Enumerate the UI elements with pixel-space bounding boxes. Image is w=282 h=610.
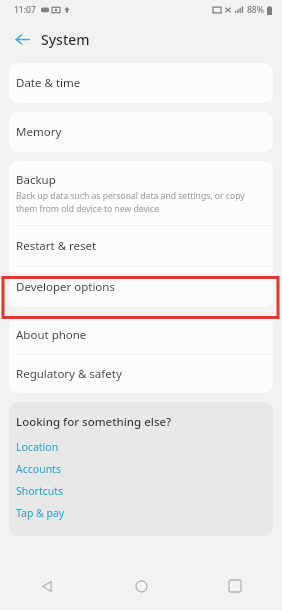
button[interactable]: Restart & reset	[9, 226, 273, 266]
staticText: 11:07	[14, 4, 36, 16]
staticText: Date & time	[16, 75, 81, 91]
staticText: About phone	[16, 327, 87, 343]
button[interactable]: Accounts	[16, 458, 273, 480]
staticText: Back up data such as personal data and s…	[16, 190, 259, 214]
button[interactable]: About phone	[9, 316, 273, 354]
staticText: 88%	[247, 4, 264, 16]
button[interactable]: Date & time	[9, 63, 273, 103]
staticText: Accounts	[16, 462, 61, 476]
button[interactable]: Tap & pay	[16, 502, 273, 524]
staticText: Memory	[16, 124, 62, 140]
button[interactable]: Back	[8, 25, 36, 53]
staticText: System	[41, 30, 90, 49]
button[interactable]: Recents	[188, 562, 282, 610]
button[interactable]: Backup	[9, 161, 273, 225]
button[interactable]: Shortcuts	[16, 480, 273, 502]
staticText: Tap & pay	[16, 506, 65, 520]
button[interactable]: Home	[94, 562, 188, 610]
staticText: Backup	[16, 172, 56, 188]
button[interactable]: Back	[0, 562, 94, 610]
button[interactable]: Regulatory & safety	[9, 355, 273, 393]
staticText: Shortcuts	[16, 484, 64, 498]
staticText: Developer options	[16, 279, 115, 295]
staticText: Location	[16, 440, 59, 454]
staticText: Regulatory & safety	[16, 366, 122, 382]
button[interactable]: Location	[16, 436, 273, 458]
button[interactable]: Memory	[9, 112, 273, 152]
staticText: Restart & reset	[16, 238, 97, 254]
button[interactable]: Developer options	[9, 267, 273, 307]
staticText: Looking for something else?	[16, 414, 172, 430]
